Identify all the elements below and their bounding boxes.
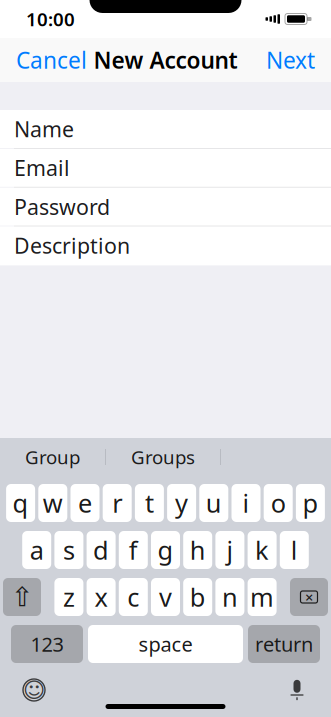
button[interactable]: n <box>215 578 244 616</box>
button[interactable]: Shift <box>3 578 41 616</box>
staticText: Email <box>14 154 70 182</box>
staticText: q <box>13 486 29 520</box>
button[interactable]: o <box>264 484 293 522</box>
button[interactable]: Description <box>0 226 331 265</box>
button[interactable]: u <box>199 484 228 522</box>
staticText: g <box>157 533 173 567</box>
staticText: Groups <box>131 445 195 469</box>
staticText: Name <box>14 115 74 143</box>
button[interactable]: space <box>88 625 243 663</box>
button[interactable]: Groups <box>106 438 220 476</box>
staticText: Cancel <box>16 45 87 75</box>
button[interactable]: q <box>6 484 35 522</box>
staticText: o <box>271 486 286 520</box>
staticText: d <box>93 533 109 567</box>
button[interactable]: j <box>215 531 244 569</box>
button[interactable]: Cancel <box>0 38 103 82</box>
button[interactable]: f <box>119 531 148 569</box>
button[interactable]: v <box>151 578 180 616</box>
button[interactable]: 123 <box>11 625 83 663</box>
staticText: New Account <box>93 45 237 75</box>
staticText: Password <box>14 192 110 221</box>
button[interactable]: s <box>54 531 83 569</box>
button[interactable]: w <box>38 484 67 522</box>
button[interactable]: k <box>248 531 277 569</box>
staticText: Group <box>25 445 80 469</box>
staticText: 10:00 <box>26 7 75 31</box>
staticText: a <box>30 533 44 567</box>
staticText: ☺ <box>23 678 45 702</box>
staticText: r <box>112 486 122 520</box>
button[interactable]: Next <box>250 38 331 82</box>
staticText: u <box>206 486 222 520</box>
button[interactable]: Name <box>0 110 331 149</box>
button[interactable]: Email <box>0 149 331 188</box>
staticText: s <box>63 533 75 567</box>
button[interactable]: p <box>296 484 325 522</box>
staticText: w <box>43 486 63 520</box>
staticText: l <box>291 533 298 567</box>
button[interactable]: z <box>54 578 83 616</box>
staticText: 123 <box>30 631 63 657</box>
button[interactable]: e <box>70 484 99 522</box>
staticText: n <box>222 580 238 614</box>
staticText: Description <box>14 231 130 259</box>
staticText: b <box>190 580 206 614</box>
button[interactable]: y <box>167 484 196 522</box>
button[interactable]: h <box>183 531 212 569</box>
staticText: p <box>302 486 318 520</box>
button[interactable]: l <box>280 531 309 569</box>
staticText: z <box>63 580 75 614</box>
button[interactable]: g <box>151 531 180 569</box>
button[interactable]: r <box>103 484 132 522</box>
staticText: j <box>226 533 233 567</box>
staticText: h <box>190 533 206 567</box>
staticText: × <box>305 587 313 607</box>
button[interactable]: x <box>87 578 116 616</box>
staticText: m <box>250 580 274 614</box>
button[interactable]: Dictation <box>275 669 319 711</box>
button[interactable]: Emoji <box>12 669 56 711</box>
staticText: e <box>78 486 92 520</box>
button[interactable]: i <box>231 484 260 522</box>
staticText: f <box>129 533 138 567</box>
staticText: ⇧ <box>11 582 33 612</box>
staticText: y <box>175 486 188 520</box>
staticText: k <box>255 533 269 567</box>
button[interactable]: b <box>183 578 212 616</box>
button[interactable]: c <box>119 578 148 616</box>
button[interactable]: Password <box>0 188 331 226</box>
staticText: space <box>138 631 192 657</box>
staticText: return <box>255 631 313 657</box>
button[interactable]: return <box>248 625 320 663</box>
staticText: i <box>242 486 249 520</box>
staticText: x <box>95 580 108 614</box>
button[interactable]: Group <box>0 438 105 476</box>
button[interactable]: a <box>22 531 51 569</box>
button[interactable]: Delete <box>290 578 328 616</box>
button[interactable]: m <box>248 578 277 616</box>
button[interactable]: t <box>135 484 164 522</box>
staticText: v <box>159 580 172 614</box>
staticText: Next <box>266 45 315 75</box>
button[interactable]: d <box>87 531 116 569</box>
staticText: c <box>127 580 139 614</box>
staticText: t <box>145 486 154 520</box>
